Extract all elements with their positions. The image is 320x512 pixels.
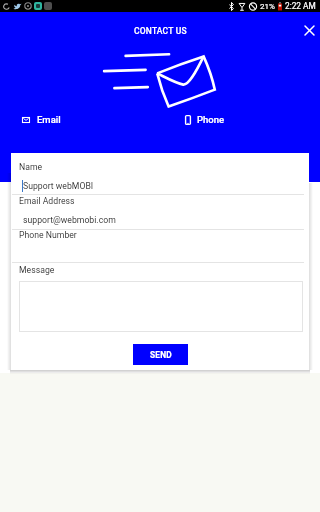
staticText: 21% [260,2,275,11]
button[interactable]: SEND [133,344,188,365]
button[interactable]: Email [22,114,61,125]
button[interactable]: Phone [185,114,225,125]
staticText: Phone [197,114,225,125]
staticText: Phone Number [19,230,77,240]
staticText: 2:22 AM [285,1,316,11]
staticText: Support webMOBI [23,181,94,191]
staticText: Message [19,265,55,275]
staticText: CONTACT US [134,26,187,36]
staticText: support@webmobi.com [23,215,116,225]
button[interactable]: Close [297,18,320,42]
staticText: Email Address [19,196,75,206]
staticText: Name [19,162,43,172]
staticText: SEND [150,350,172,360]
staticText: Email [37,114,61,125]
button[interactable] [19,281,303,332]
